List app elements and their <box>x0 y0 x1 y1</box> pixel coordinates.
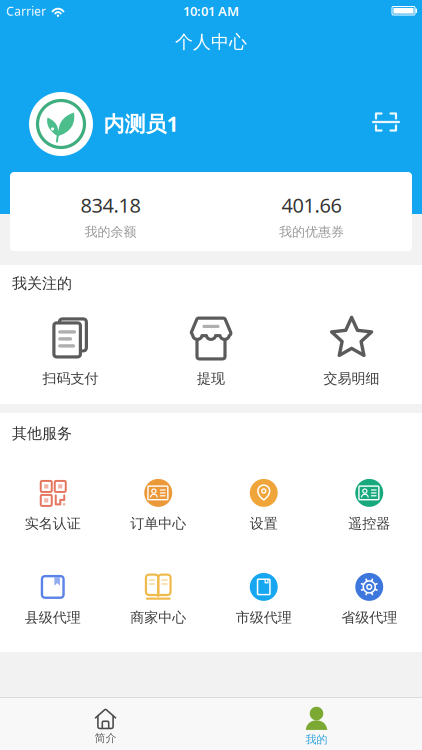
staticText: 设置 <box>250 515 278 532</box>
staticText: 县级代理 <box>25 609 81 626</box>
staticText: 简介 <box>94 731 116 745</box>
button[interactable]: 遥控器 <box>316 479 422 532</box>
staticText: 内测员1 <box>103 110 178 137</box>
staticText: 401.66 <box>281 192 341 218</box>
staticText: 其他服务 <box>12 424 72 443</box>
button[interactable]: 简介 <box>0 708 211 745</box>
button[interactable]: 扫一扫 <box>366 102 406 142</box>
staticText: 实名认证 <box>25 515 81 532</box>
staticText: 我关注的 <box>12 274 72 293</box>
staticText: 交易明细 <box>324 370 380 387</box>
button[interactable]: 401.66 <box>211 172 412 251</box>
button[interactable]: 商家中心 <box>105 573 211 626</box>
staticText: 个人中心 <box>175 31 247 53</box>
button[interactable]: 扫码支付 <box>0 315 141 387</box>
staticText: 我的余额 <box>84 224 136 240</box>
staticText: 834.18 <box>80 192 140 218</box>
staticText: 省级代理 <box>341 609 397 626</box>
button[interactable]: 提现 <box>141 315 281 387</box>
button[interactable]: 市级代理 <box>211 573 316 626</box>
staticText: 扫码支付 <box>42 370 98 387</box>
button[interactable]: 交易明细 <box>281 315 422 387</box>
staticText: 遥控器 <box>348 515 390 532</box>
staticText: 订单中心 <box>130 515 186 532</box>
button[interactable]: 834.18 <box>10 172 211 251</box>
button[interactable]: 实名认证 <box>0 479 105 532</box>
staticText: 我的 <box>305 733 327 746</box>
button[interactable]: 我的 <box>211 707 422 746</box>
button[interactable]: 设置 <box>211 479 316 532</box>
button[interactable]: 订单中心 <box>105 479 211 532</box>
staticText: 我的优惠券 <box>279 224 344 240</box>
staticText: 商家中心 <box>130 609 186 626</box>
button[interactable]: 省级代理 <box>316 573 422 626</box>
staticText: 市级代理 <box>236 609 292 626</box>
staticText: Carrier <box>6 3 46 19</box>
button[interactable]: 县级代理 <box>0 573 105 626</box>
staticText: 10:01 AM <box>183 2 239 20</box>
staticText: 提现 <box>197 370 225 387</box>
